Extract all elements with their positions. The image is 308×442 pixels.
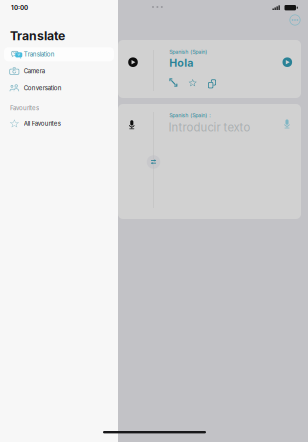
staticText: Translation	[24, 50, 55, 58]
button[interactable]: Dictate in Spanish	[278, 115, 296, 133]
staticText: 10:00	[11, 4, 28, 11]
staticText: Introducir texto	[168, 120, 250, 134]
staticText: Spanish (Spain)	[169, 48, 207, 55]
button[interactable]: Pane options	[286, 11, 304, 29]
staticText: All Favourites	[24, 120, 61, 127]
button[interactable]: Add to favourites	[186, 76, 199, 89]
button[interactable]: Swap languages	[145, 154, 161, 170]
staticText: Translate	[10, 28, 65, 43]
button[interactable]: Play translation	[277, 52, 297, 72]
button[interactable]: Camera	[9, 64, 115, 78]
button[interactable]: Translation	[9, 47, 115, 61]
staticText: Camera	[24, 67, 45, 75]
button[interactable]: Conversation	[9, 81, 115, 95]
button[interactable]: Copy translation	[204, 76, 217, 89]
staticText: Hola	[169, 56, 193, 69]
staticText: Favourites	[10, 104, 39, 112]
button[interactable]: Play source text	[123, 52, 143, 72]
button[interactable]: Expand translation	[167, 76, 180, 89]
staticText: Conversation	[24, 84, 62, 92]
staticText: Spanish (Spain) :	[169, 112, 211, 119]
button[interactable]: All Favourites	[9, 116, 115, 130]
button[interactable]: Dictate	[123, 116, 141, 134]
